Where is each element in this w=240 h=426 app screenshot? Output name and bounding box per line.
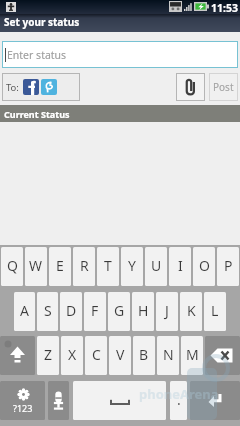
- staticText: Post: [213, 80, 234, 94]
- button[interactable]: Q: [1, 247, 23, 286]
- button[interactable]: W: [25, 247, 47, 286]
- button[interactable]: To:: [2, 73, 80, 101]
- button[interactable]: B: [133, 336, 155, 375]
- button[interactable]: J: [156, 292, 178, 331]
- button[interactable]: Z: [37, 336, 59, 375]
- staticText: Z: [44, 345, 53, 364]
- staticText: ?123: [13, 402, 33, 414]
- button[interactable]: R: [73, 247, 95, 286]
- button[interactable]: C: [85, 336, 107, 375]
- staticText: V: [116, 345, 125, 364]
- button[interactable]: Voice input: [48, 381, 69, 420]
- button[interactable]: Y: [121, 247, 143, 286]
- button[interactable]: X: [61, 336, 83, 375]
- button[interactable]: A: [14, 292, 35, 331]
- button[interactable]: Post: [209, 73, 238, 101]
- staticText: phoneArena: [139, 385, 219, 403]
- staticText: Current Status: [4, 108, 70, 120]
- staticText: W: [29, 256, 43, 275]
- button[interactable]: E: [49, 247, 71, 286]
- staticText: U: [151, 256, 162, 275]
- staticText: .: [177, 390, 181, 409]
- staticText: H: [138, 301, 149, 320]
- staticText: T: [104, 256, 112, 275]
- button[interactable]: L: [204, 292, 226, 331]
- staticText: P: [224, 256, 233, 275]
- staticText: Set your status: [4, 15, 80, 29]
- staticText: 11:53: [211, 1, 238, 15]
- staticText: E: [56, 256, 64, 275]
- button[interactable]: P: [217, 247, 239, 286]
- staticText: L: [211, 301, 219, 320]
- staticText: A: [20, 301, 29, 320]
- staticText: F: [91, 301, 99, 320]
- staticText: Q: [7, 256, 18, 275]
- button[interactable]: Set your status: [0, 14, 240, 32]
- staticText: O: [199, 256, 210, 275]
- button[interactable]: Enter: [190, 381, 240, 420]
- button[interactable]: ?123: [0, 381, 45, 420]
- staticText: C: [92, 345, 101, 364]
- staticText: Y: [128, 256, 136, 275]
- button[interactable]: K: [180, 292, 202, 331]
- staticText: X: [68, 345, 77, 364]
- button[interactable]: U: [145, 247, 167, 286]
- button[interactable]: N: [157, 336, 179, 375]
- staticText: S: [44, 301, 52, 320]
- staticText: N: [163, 345, 174, 364]
- staticText: Enter status: [7, 48, 67, 62]
- staticText: J: [165, 301, 169, 320]
- staticText: B: [139, 345, 149, 364]
- staticText: M: [186, 345, 199, 364]
- button[interactable]: .: [170, 381, 187, 420]
- button[interactable]: Backspace: [205, 336, 240, 375]
- staticText: D: [66, 301, 77, 320]
- button[interactable]: G: [108, 292, 130, 331]
- staticText: K: [187, 301, 196, 320]
- button[interactable]: D: [60, 292, 82, 331]
- button[interactable]: V: [109, 336, 131, 375]
- button[interactable]: O: [193, 247, 215, 286]
- staticText: To:: [6, 81, 19, 94]
- button[interactable]: I: [169, 247, 191, 286]
- staticText: G: [114, 301, 125, 320]
- button[interactable]: [73, 381, 166, 420]
- button[interactable]: T: [97, 247, 119, 286]
- staticText: I: [178, 256, 183, 275]
- button[interactable]: S: [37, 292, 58, 331]
- button[interactable]: F: [84, 292, 106, 331]
- button[interactable]: M: [181, 336, 203, 375]
- staticText: R: [80, 256, 89, 275]
- button[interactable]: Attach: [176, 73, 205, 101]
- button[interactable]: Enter status: [2, 41, 238, 68]
- button[interactable]: H: [132, 292, 154, 331]
- button[interactable]: Shift: [0, 336, 35, 375]
